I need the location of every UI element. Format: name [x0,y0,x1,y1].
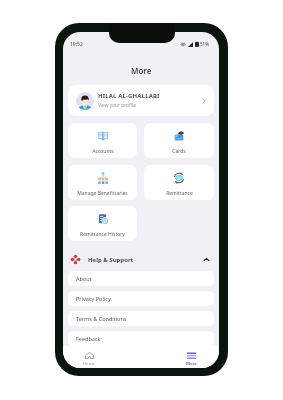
staticText: About [76,275,92,282]
button[interactable]: HILAL AL-GHALLABI [68,85,214,116]
other: Open profile [199,96,209,106]
staticText: Manage Beneficiaries [77,190,128,197]
button[interactable]: Cards [144,123,214,158]
button[interactable]: Help & Support [68,251,214,268]
button[interactable]: About [68,271,214,286]
button[interactable]: Remittance [144,165,214,200]
other: Collapse Help and Support [202,255,211,264]
button[interactable]: Privacy Policy [68,291,214,306]
staticText: Remittance History [80,231,125,238]
button[interactable]: Manage Beneficiaries [68,165,137,200]
button[interactable]: Terms & Conditions [68,311,214,326]
staticText: Terms & Conditions [76,315,127,322]
staticText: Feedback [76,335,101,342]
button[interactable]: Remittance History [68,206,137,241]
staticText: Cards [172,148,186,155]
staticText: Home [83,361,95,367]
staticText: More [131,65,152,76]
staticText: HILAL AL-GHALLABI [98,92,160,100]
button[interactable]: Accounts [68,123,137,158]
staticText: Accounts [92,148,114,155]
staticText: Remittance [166,190,193,197]
button[interactable]: More [177,346,205,368]
staticText: More [186,361,197,367]
button[interactable]: Home [75,346,103,368]
staticText: 19:52 [70,41,83,48]
staticText: Privacy Policy [76,295,111,302]
staticText: View your profile [98,102,136,109]
staticText: 51% [200,41,209,47]
button[interactable]: Feedback [68,331,214,346]
staticText: Help & Support [88,256,134,264]
